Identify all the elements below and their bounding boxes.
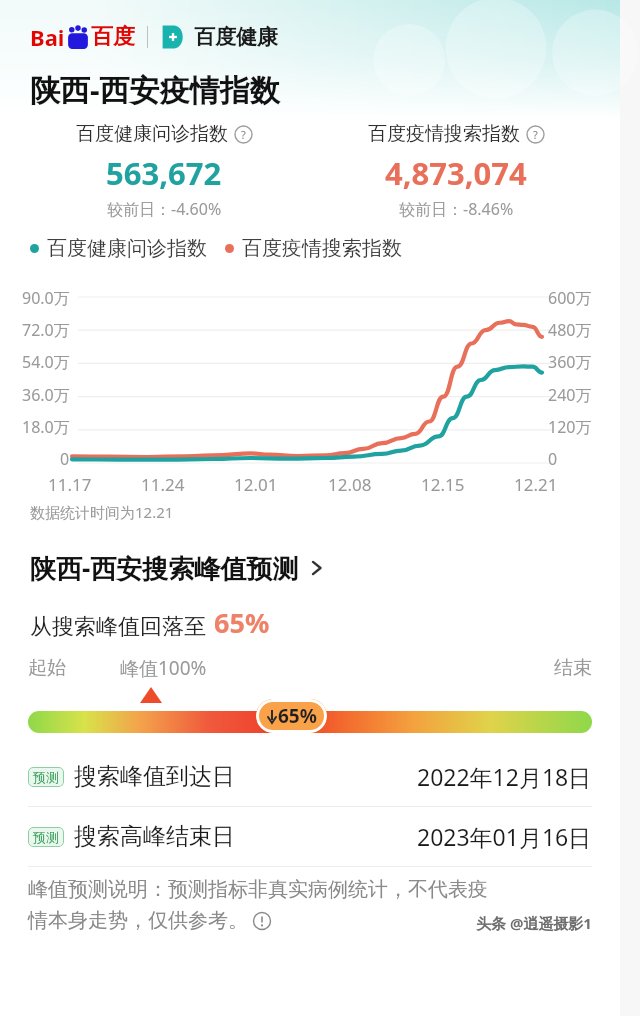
staticText: 预测 <box>33 829 59 845</box>
staticText: 600万 <box>548 287 592 309</box>
button[interactable]: 提示 <box>252 911 272 931</box>
staticText: 12.01 <box>234 473 278 496</box>
staticText: 12.21 <box>514 473 558 496</box>
staticText: 12.08 <box>328 473 372 496</box>
staticText: ? <box>241 127 246 142</box>
staticText: 数据统计时间为12.21 <box>30 502 174 522</box>
staticText: 百度健康问诊指数 <box>76 122 228 146</box>
staticText: 头条 @逍遥摄影1 <box>476 913 592 933</box>
staticText: 2022年12月18日 <box>417 761 592 792</box>
staticText: 65% <box>278 703 317 729</box>
staticText: 搜索峰值到达日 <box>74 762 235 791</box>
staticText: 陕西-西安疫情指数 <box>30 69 280 110</box>
staticText: 2023年01月16日 <box>417 821 592 852</box>
staticText: 从搜索峰值回落至 <box>30 613 206 641</box>
staticText: 65% <box>214 604 270 641</box>
staticText: 36.0万 <box>22 384 70 406</box>
staticText: ? <box>533 127 538 142</box>
button[interactable]: 预测 <box>0 807 620 866</box>
staticText: 结束 <box>554 656 592 680</box>
staticText: 240万 <box>548 384 592 406</box>
staticText: 0 <box>548 448 558 470</box>
staticText: 情本身走势，仅供参考。 <box>28 908 248 933</box>
staticText: 峰值100% <box>120 655 207 681</box>
staticText: 百度疫情搜索指数 <box>242 236 402 261</box>
staticText: 11.24 <box>141 473 185 496</box>
staticText: 预测 <box>33 769 59 785</box>
staticText: Bai <box>30 22 65 52</box>
staticText: 18.0万 <box>22 416 70 438</box>
button[interactable]: 65% <box>256 699 327 733</box>
staticText: 360万 <box>548 351 592 373</box>
staticText: 12.15 <box>421 473 465 496</box>
staticText: 搜索高峰结束日 <box>74 822 235 851</box>
staticText: 起始 <box>28 656 66 680</box>
button[interactable]: 陕西-西安搜索峰值预测 <box>0 548 620 588</box>
staticText: 百度健康 <box>194 24 278 50</box>
staticText: 百度 <box>91 23 135 51</box>
staticText: 54.0万 <box>22 351 70 373</box>
staticText: 4,873,074 <box>385 152 527 194</box>
staticText: 563,672 <box>106 152 222 194</box>
staticText: 较前日：-8.46% <box>399 198 514 220</box>
staticText: 11.17 <box>48 473 92 496</box>
button[interactable]: 说明 <box>526 125 545 144</box>
staticText: 较前日：-4.60% <box>107 198 222 220</box>
staticText: 百度健康问诊指数 <box>47 236 207 261</box>
staticText: 72.0万 <box>22 319 70 341</box>
staticText: 120万 <box>548 416 592 438</box>
staticText: 480万 <box>548 319 592 341</box>
staticText: 百度疫情搜索指数 <box>368 122 520 146</box>
staticText: 90.0万 <box>22 287 70 309</box>
staticText: 0 <box>60 448 70 470</box>
staticText: 峰值预测说明：预测指标非真实病例统计，不代表疫 <box>28 877 488 902</box>
staticText: 陕西-西安搜索峰值预测 <box>30 550 299 586</box>
button[interactable]: 预测 <box>0 747 620 806</box>
button[interactable]: 说明 <box>234 125 253 144</box>
